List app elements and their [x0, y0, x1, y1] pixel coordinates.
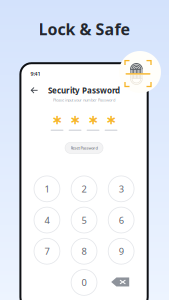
button[interactable]: 3 — [108, 176, 134, 202]
staticText: 1 — [44, 183, 49, 195]
staticText: 3 — [119, 183, 124, 195]
staticText: Lock & Safe — [38, 18, 130, 40]
staticText: ∗ — [51, 112, 62, 127]
button[interactable]: 7 — [34, 238, 60, 264]
button[interactable]: 6 — [108, 207, 134, 233]
staticText: 0 — [81, 276, 86, 289]
staticText: ∗ — [69, 112, 80, 127]
button[interactable]: Reset Password — [65, 142, 103, 153]
staticText: 2 — [81, 183, 86, 195]
staticText: 4 — [44, 214, 49, 226]
button[interactable]: 4 — [34, 207, 60, 233]
staticText: Security Password — [48, 85, 120, 96]
button[interactable]: 5 — [71, 207, 97, 233]
staticText: 8 — [81, 245, 86, 257]
button[interactable]: 0 — [71, 269, 97, 295]
button[interactable]: 2 — [71, 176, 97, 202]
staticText: 9:41 — [30, 70, 40, 77]
staticText: Reset Password — [70, 145, 97, 150]
button[interactable]: Back — [29, 85, 39, 95]
staticText: 5 — [81, 214, 86, 226]
button[interactable]: 1 — [34, 176, 60, 202]
staticText: ∗ — [87, 112, 98, 127]
button[interactable]: 9 — [108, 238, 134, 264]
staticText: Please input your number Password — [53, 97, 115, 103]
staticText: ∗ — [105, 112, 116, 127]
button[interactable]: Delete — [108, 269, 134, 295]
button[interactable]: 8 — [71, 238, 97, 264]
staticText: 9 — [119, 245, 124, 257]
staticText: 7 — [44, 245, 49, 257]
staticText: 6 — [119, 214, 124, 226]
